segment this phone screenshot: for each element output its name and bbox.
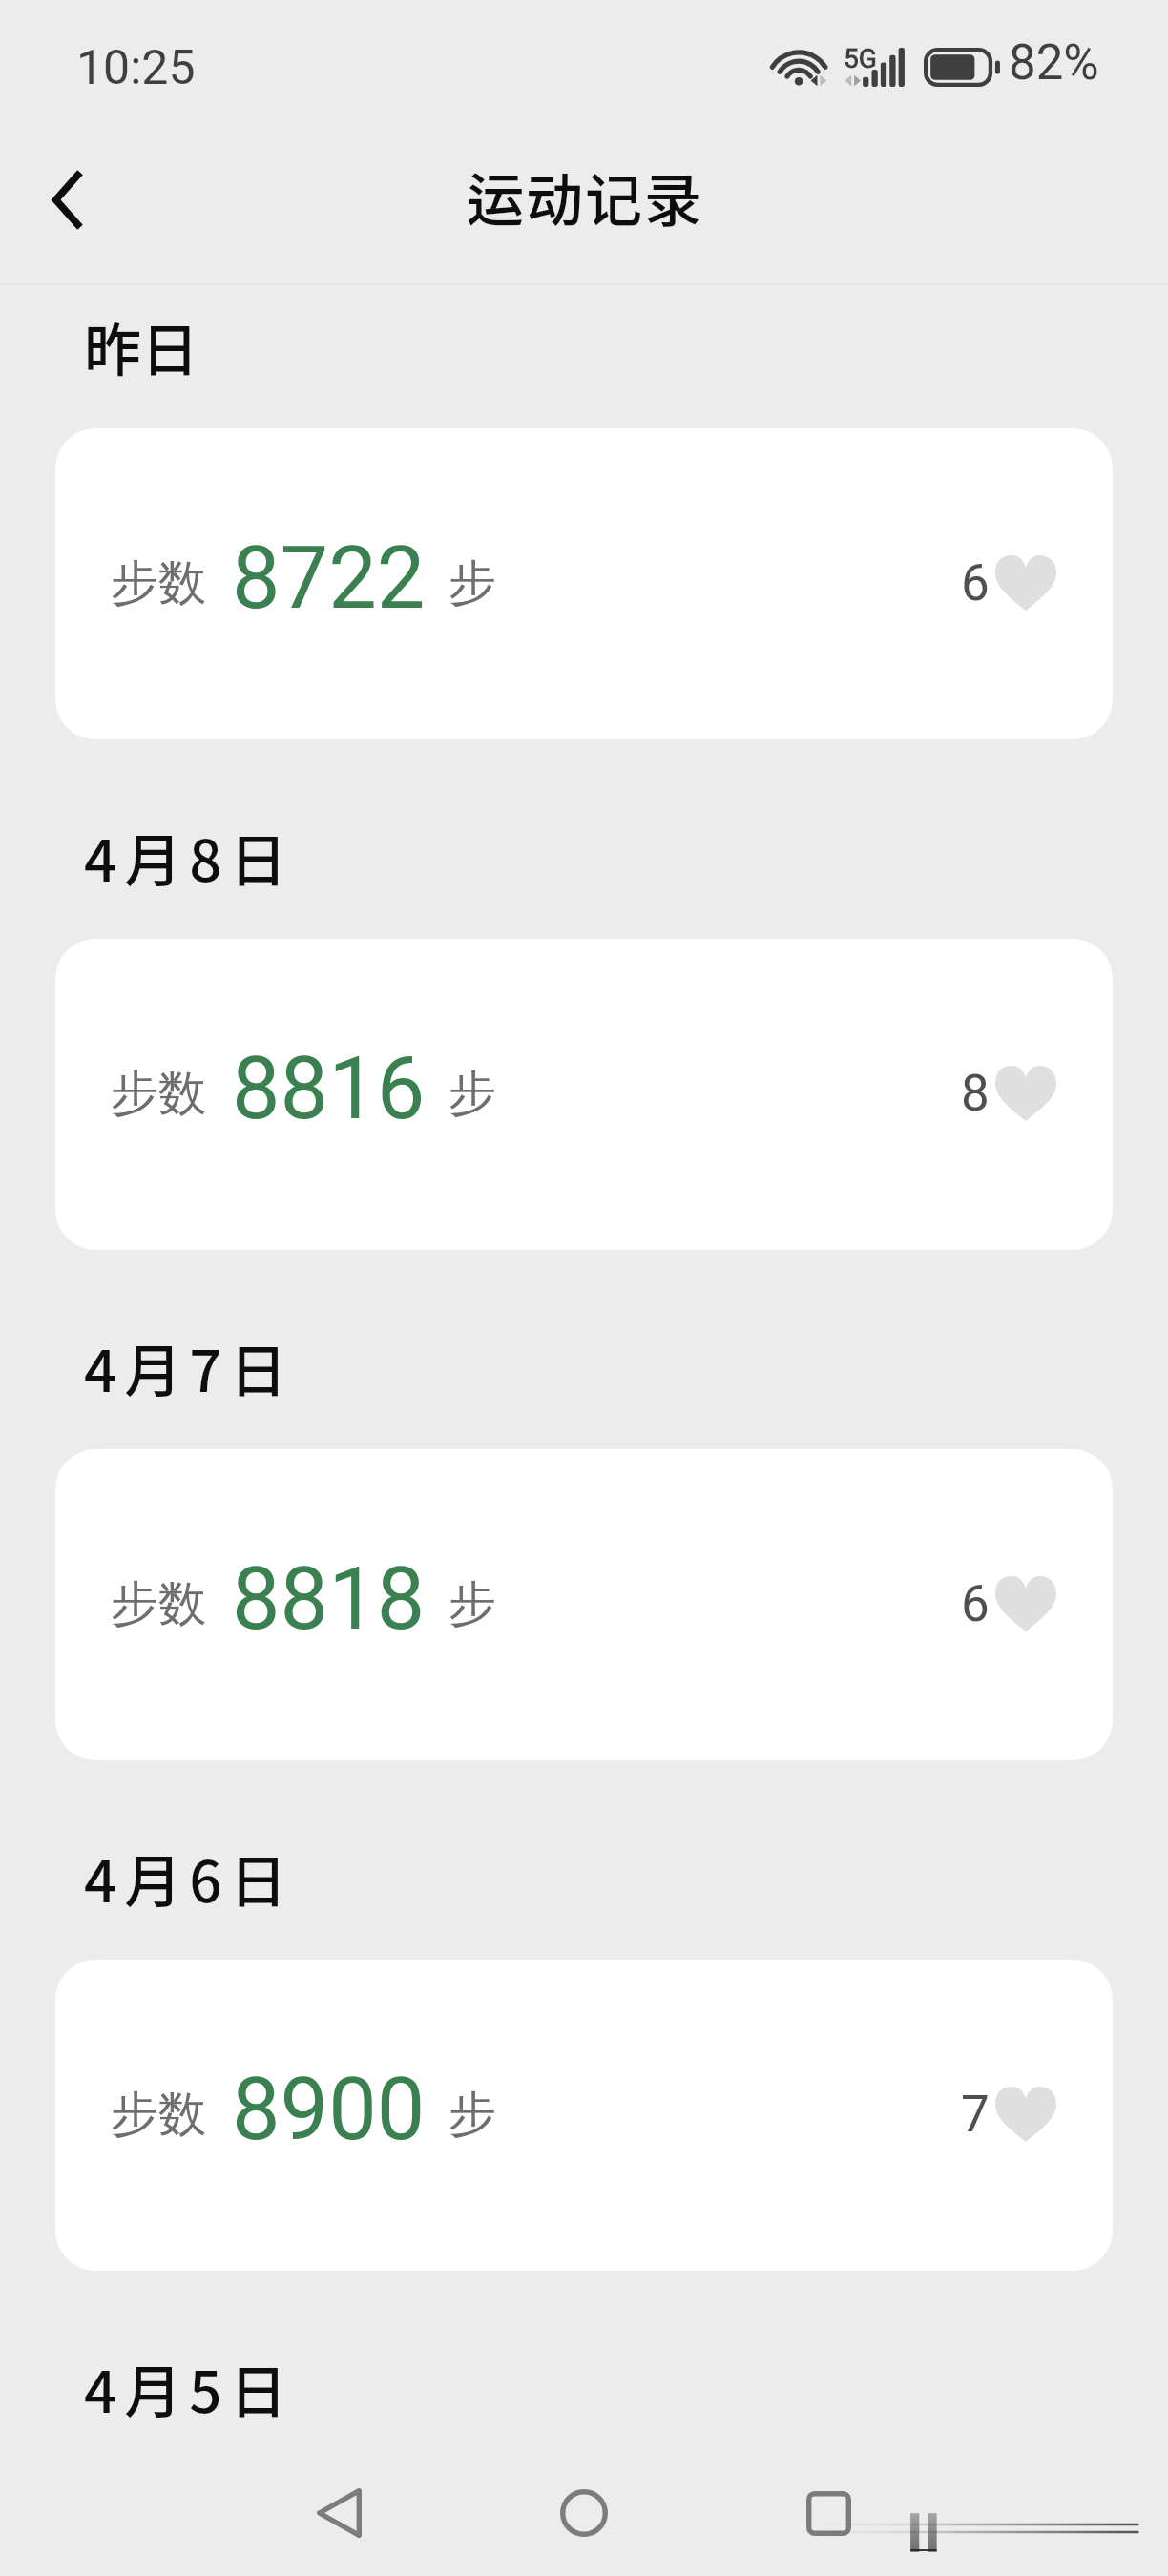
button[interactable]: 步数 <box>55 939 1113 1250</box>
button[interactable]: Recents <box>781 2465 876 2561</box>
staticText: 4月6日 <box>84 1836 295 1919</box>
staticText: 8818 <box>232 1549 426 1650</box>
staticText: 步 <box>448 1574 496 1634</box>
staticText: 步数 <box>111 1574 206 1634</box>
staticText: 82% <box>1009 34 1099 92</box>
button[interactable]: Back <box>291 2465 386 2561</box>
staticText: 步数 <box>111 2085 206 2145</box>
button[interactable]: 步数 <box>55 1449 1113 1760</box>
staticText: 5G <box>844 43 877 74</box>
staticText: 8 <box>961 1064 990 1123</box>
staticText: 8816 <box>232 1039 426 1139</box>
staticText: 步数 <box>111 1064 206 1124</box>
staticText: 8900 <box>232 2060 426 2160</box>
staticText: 8722 <box>232 529 426 629</box>
staticText: 4月5日 <box>84 2346 295 2429</box>
staticText: 运动记录 <box>467 155 703 238</box>
staticText: 10:25 <box>76 40 196 96</box>
staticText: 4月8日 <box>84 815 295 898</box>
staticText: 步 <box>448 1064 496 1124</box>
staticText: 步 <box>448 2085 496 2145</box>
staticText: 6 <box>961 1574 990 1633</box>
staticText: 昨日 <box>84 304 198 387</box>
staticText: 7 <box>961 2085 990 2144</box>
staticText: 步数 <box>111 553 206 613</box>
button[interactable]: 步数 <box>55 428 1113 739</box>
button[interactable]: 步数 <box>55 1960 1113 2271</box>
button[interactable]: Home <box>536 2465 632 2561</box>
staticText: 步 <box>448 553 496 613</box>
staticText: 4月7日 <box>84 1325 295 1408</box>
staticText: 6 <box>961 553 990 613</box>
button[interactable]: Back <box>21 154 113 245</box>
